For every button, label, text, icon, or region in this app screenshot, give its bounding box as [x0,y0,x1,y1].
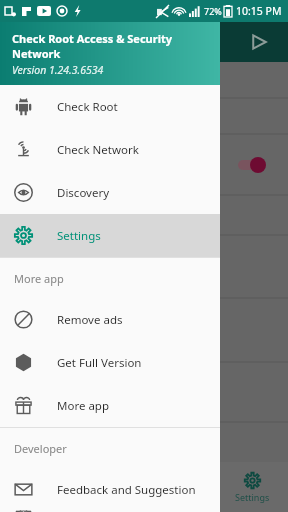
button[interactable]: Settings tab [235,472,270,503]
staticText: Settings [235,491,270,503]
staticText: 72% [204,5,222,17]
staticText: Remove ads [57,312,123,328]
staticText: Discovery [57,185,110,201]
button[interactable]: Remove ads [0,298,220,341]
button[interactable]: More app [0,384,220,427]
button[interactable]: Get Full Version [0,341,220,384]
staticText: Check Root Access & Security Network [12,31,220,61]
button[interactable]: Discovery [0,171,220,214]
staticText: More app [57,398,109,414]
button[interactable]: Report problem [0,511,220,512]
button[interactable]: Settings [0,214,220,257]
staticText: Developer [14,441,67,456]
staticText: Check Network [57,142,139,158]
staticText: Feedback and Suggestion [57,482,196,498]
staticText: Version 1.24.3.6534 [12,63,104,77]
staticText: 10:15 PM [236,4,282,18]
staticText: More app [14,271,64,286]
button[interactable]: Check Root [0,85,220,128]
button[interactable]: Feedback and Suggestion [0,468,220,511]
staticText: Settings [57,228,101,244]
staticText: Get Full Version [57,355,142,371]
staticText: Check Root [57,99,118,115]
button[interactable]: Check Network [0,128,220,171]
